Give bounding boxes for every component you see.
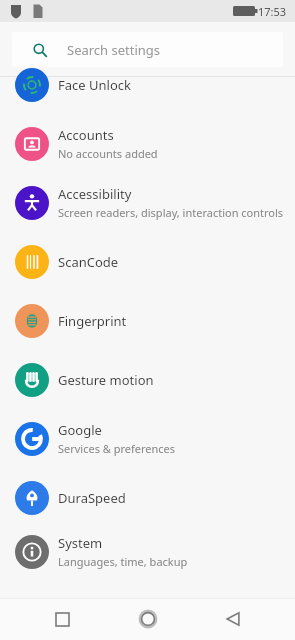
staticText: Search settings	[67, 41, 161, 59]
staticText: No accounts added	[58, 146, 158, 161]
button[interactable]: Recent apps	[39, 598, 85, 640]
staticText: System	[58, 534, 103, 552]
staticText: DuraSpeed	[58, 489, 126, 507]
staticText: ScanCode	[58, 253, 119, 271]
button[interactable]: Gesture motion	[0, 350, 295, 409]
staticText: Face Unlock	[58, 76, 131, 94]
button[interactable]: Search settings	[12, 32, 283, 67]
button[interactable]: Face Unlock	[0, 55, 295, 114]
staticText: Accounts	[58, 126, 114, 144]
button[interactable]: System	[0, 527, 295, 576]
button[interactable]: Home	[125, 598, 171, 640]
staticText: Services & preferences	[58, 441, 176, 456]
staticText: Gesture motion	[58, 371, 154, 389]
staticText: Languages, time, backup	[58, 554, 188, 569]
staticText: Fingerprint	[58, 312, 127, 330]
staticText: Google	[58, 421, 102, 439]
button[interactable]: Accessibility	[0, 173, 295, 232]
staticText: Screen readers, display, interaction con…	[58, 205, 284, 220]
button[interactable]: DuraSpeed	[0, 468, 295, 527]
button[interactable]: Fingerprint	[0, 291, 295, 350]
button[interactable]: Accounts	[0, 114, 295, 173]
button[interactable]: Google	[0, 409, 295, 468]
button[interactable]: Back	[210, 598, 256, 640]
staticText: Accessibility	[58, 185, 132, 203]
button[interactable]: ScanCode	[0, 232, 295, 291]
staticText: 17:53	[258, 4, 287, 19]
